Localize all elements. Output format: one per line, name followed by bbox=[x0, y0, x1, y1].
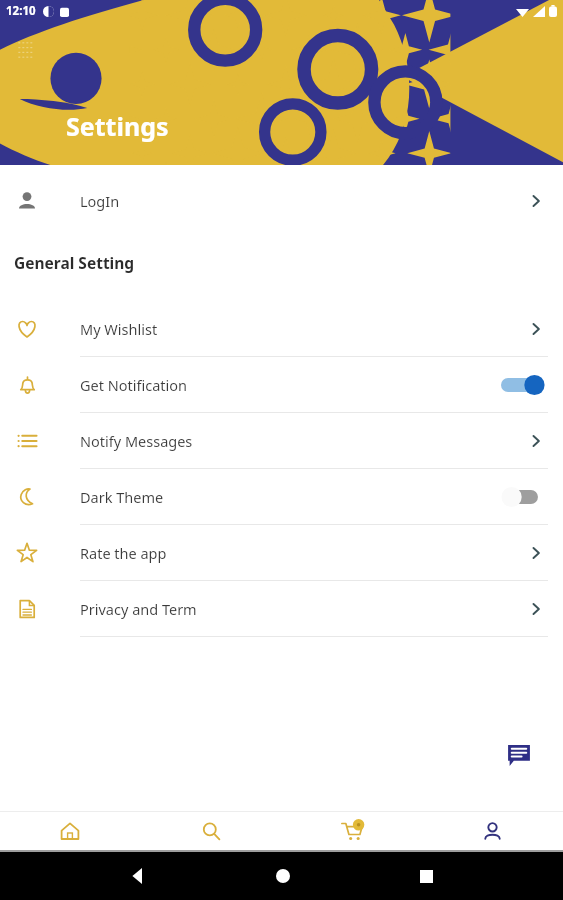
button[interactable]: Rate the app bbox=[0, 525, 563, 580]
button[interactable]: Notify Messages bbox=[0, 413, 563, 468]
button[interactable]: Cart bbox=[281, 812, 422, 850]
staticText: Settings bbox=[66, 109, 169, 143]
staticText: Notify Messages bbox=[80, 431, 527, 451]
button[interactable]: Dark Theme toggle, off bbox=[501, 486, 545, 508]
button[interactable]: Get Notification bbox=[0, 357, 563, 412]
staticText: Dark Theme bbox=[80, 487, 501, 507]
staticText: 12:10 bbox=[6, 3, 36, 19]
button[interactable]: Chat bbox=[493, 729, 545, 781]
button[interactable]: Get Notification toggle, on bbox=[501, 374, 545, 396]
button[interactable]: LogIn bbox=[0, 173, 563, 228]
button[interactable]: Privacy and Term bbox=[0, 581, 563, 636]
button[interactable]: Search bbox=[140, 812, 281, 850]
button[interactable]: Profile bbox=[422, 812, 563, 850]
button[interactable]: Menu bbox=[14, 38, 38, 62]
button[interactable]: Home bbox=[0, 812, 140, 850]
staticText: Privacy and Term bbox=[80, 599, 527, 619]
button[interactable]: Dark Theme bbox=[0, 469, 563, 524]
staticText: Get Notification bbox=[80, 375, 501, 395]
staticText: LogIn bbox=[80, 191, 527, 211]
staticText: Rate the app bbox=[80, 543, 527, 563]
button[interactable]: My Wishlist bbox=[0, 301, 563, 356]
staticText: General Setting bbox=[14, 252, 135, 273]
staticText: My Wishlist bbox=[80, 319, 527, 339]
